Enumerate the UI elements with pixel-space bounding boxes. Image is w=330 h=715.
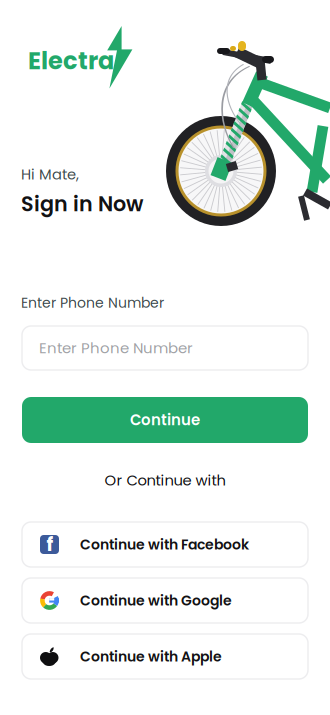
- button[interactable]: f: [22, 522, 308, 567]
- staticText: Continue with Google: [80, 591, 232, 610]
- staticText: Or Continue with: [104, 470, 225, 491]
- staticText: f: [46, 531, 53, 557]
- staticText: Sign in Now: [21, 189, 143, 218]
- staticText: Continue with Apple: [80, 647, 222, 666]
- staticText: Hi Mate,: [21, 164, 79, 184]
- staticText: Enter Phone Number: [39, 337, 193, 358]
- button[interactable]: Continue with Apple: [22, 634, 308, 679]
- staticText: Electra: [28, 44, 114, 78]
- staticText: Continue with Facebook: [80, 535, 249, 554]
- staticText: Enter Phone Number: [21, 293, 164, 313]
- staticText: Continue: [130, 409, 200, 430]
- button[interactable]: Continue: [22, 397, 308, 443]
- button[interactable]: Continue with Google: [22, 578, 308, 623]
